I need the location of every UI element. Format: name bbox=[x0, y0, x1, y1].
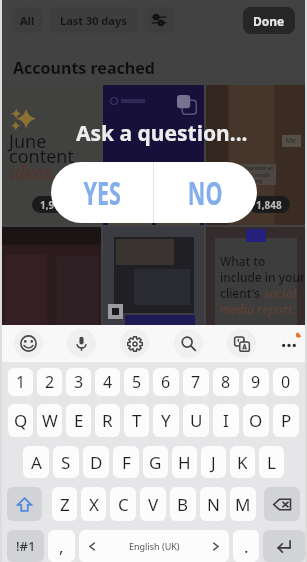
staticText: N bbox=[207, 493, 220, 516]
button[interactable]: June bbox=[0, 85, 101, 225]
button[interactable]: L bbox=[259, 446, 284, 478]
staticText: 6 bbox=[161, 371, 171, 393]
button[interactable]: Search bbox=[174, 329, 203, 358]
staticText: C bbox=[118, 493, 129, 516]
button[interactable]: !#1 bbox=[7, 530, 44, 562]
button[interactable]: X bbox=[81, 487, 106, 521]
button[interactable]: K bbox=[230, 446, 255, 478]
button[interactable]: U bbox=[183, 404, 209, 437]
staticText: social bbox=[264, 285, 297, 301]
staticText: 3 bbox=[74, 371, 84, 393]
staticText: B bbox=[177, 493, 189, 516]
staticText: media report. bbox=[220, 301, 296, 317]
button[interactable]: W bbox=[37, 404, 62, 437]
button[interactable]: S bbox=[53, 446, 79, 478]
staticText: 4 bbox=[103, 371, 113, 393]
button[interactable]: All bbox=[12, 7, 43, 33]
staticText: M bbox=[235, 493, 251, 516]
staticText: . bbox=[244, 535, 249, 558]
staticText: What to bbox=[220, 253, 266, 269]
button[interactable]: V bbox=[140, 487, 166, 521]
button[interactable]: D bbox=[83, 446, 109, 478]
staticText: U bbox=[190, 409, 203, 432]
staticText: O bbox=[249, 409, 263, 432]
button[interactable]: Translate bbox=[227, 329, 256, 358]
button[interactable]: B bbox=[170, 487, 196, 521]
button[interactable]: YES bbox=[51, 162, 153, 223]
button[interactable]: What to bbox=[206, 227, 307, 325]
staticText: F bbox=[122, 451, 131, 474]
button[interactable]: A bbox=[23, 446, 49, 478]
button[interactable]: O bbox=[243, 404, 269, 437]
button[interactable]: Me bbox=[206, 85, 307, 225]
staticText: I bbox=[223, 409, 229, 432]
button[interactable]: Z bbox=[52, 487, 77, 521]
staticText: Z bbox=[60, 493, 70, 516]
staticText: K bbox=[237, 451, 248, 474]
button[interactable]: Last 30 days bbox=[49, 7, 138, 33]
staticText: 0 bbox=[281, 371, 291, 393]
button[interactable] bbox=[103, 227, 204, 325]
button[interactable]: 5 bbox=[124, 368, 149, 396]
staticText: NO bbox=[188, 171, 223, 214]
button[interactable]: Done bbox=[243, 7, 295, 34]
button[interactable]: 2 bbox=[37, 368, 62, 396]
button[interactable]: J bbox=[201, 446, 226, 478]
button[interactable]: Filters bbox=[144, 7, 174, 33]
staticText: content bbox=[9, 144, 74, 169]
staticText: S bbox=[61, 451, 71, 474]
button[interactable]: G bbox=[143, 446, 168, 478]
button[interactable]: Shift bbox=[7, 487, 42, 521]
button[interactable]: T bbox=[124, 404, 149, 437]
staticText: , bbox=[59, 535, 64, 558]
button[interactable]: H bbox=[172, 446, 197, 478]
button[interactable]: 7 bbox=[183, 368, 209, 396]
staticText: 8 bbox=[221, 371, 231, 393]
button[interactable]: 1 bbox=[8, 368, 33, 396]
staticText: E bbox=[74, 409, 84, 432]
button[interactable]: M bbox=[230, 487, 256, 521]
button[interactable]: 9 bbox=[243, 368, 269, 396]
staticText: client's bbox=[220, 285, 264, 301]
staticText: 1 bbox=[16, 371, 26, 393]
button[interactable]: E bbox=[66, 404, 91, 437]
staticText: All bbox=[20, 13, 35, 28]
button[interactable]: Backspace bbox=[264, 487, 300, 521]
button[interactable]: English (UK) bbox=[79, 530, 229, 562]
staticText: 5 bbox=[132, 371, 142, 393]
staticText: Me bbox=[286, 136, 297, 146]
button[interactable]: P bbox=[273, 404, 299, 437]
button[interactable]: Voice input bbox=[67, 329, 96, 358]
button[interactable]: Enter bbox=[263, 530, 305, 562]
button[interactable]: More options bbox=[274, 329, 303, 358]
button[interactable]: Y bbox=[153, 404, 179, 437]
button[interactable] bbox=[103, 85, 204, 225]
button[interactable]: , bbox=[48, 530, 75, 562]
staticText: P bbox=[281, 409, 292, 432]
button[interactable]: . bbox=[233, 530, 259, 562]
button[interactable]: Settings bbox=[120, 329, 149, 358]
staticText: G bbox=[149, 451, 162, 474]
button[interactable]: C bbox=[110, 487, 136, 521]
staticText: W bbox=[42, 409, 58, 432]
staticText: Y bbox=[161, 409, 171, 432]
staticText: 1,848 bbox=[256, 198, 282, 212]
staticText: 9 bbox=[251, 371, 261, 393]
staticText: X bbox=[89, 493, 99, 516]
staticText: Ask a question... bbox=[76, 119, 248, 148]
staticText: R bbox=[102, 409, 113, 432]
button[interactable]: R bbox=[95, 404, 120, 437]
staticText: J bbox=[211, 451, 216, 474]
button[interactable]: Emoji bbox=[14, 329, 43, 358]
button[interactable]: N bbox=[200, 487, 226, 521]
button[interactable]: 4 bbox=[95, 368, 120, 396]
button[interactable]: I bbox=[213, 404, 239, 437]
button[interactable]: 6 bbox=[153, 368, 179, 396]
button[interactable]: Q bbox=[8, 404, 33, 437]
button[interactable]: 8 bbox=[213, 368, 239, 396]
button[interactable]: NO bbox=[154, 162, 257, 223]
button[interactable]: 0 bbox=[273, 368, 299, 396]
button[interactable] bbox=[0, 227, 101, 325]
button[interactable]: 3 bbox=[66, 368, 91, 396]
button[interactable]: F bbox=[113, 446, 139, 478]
